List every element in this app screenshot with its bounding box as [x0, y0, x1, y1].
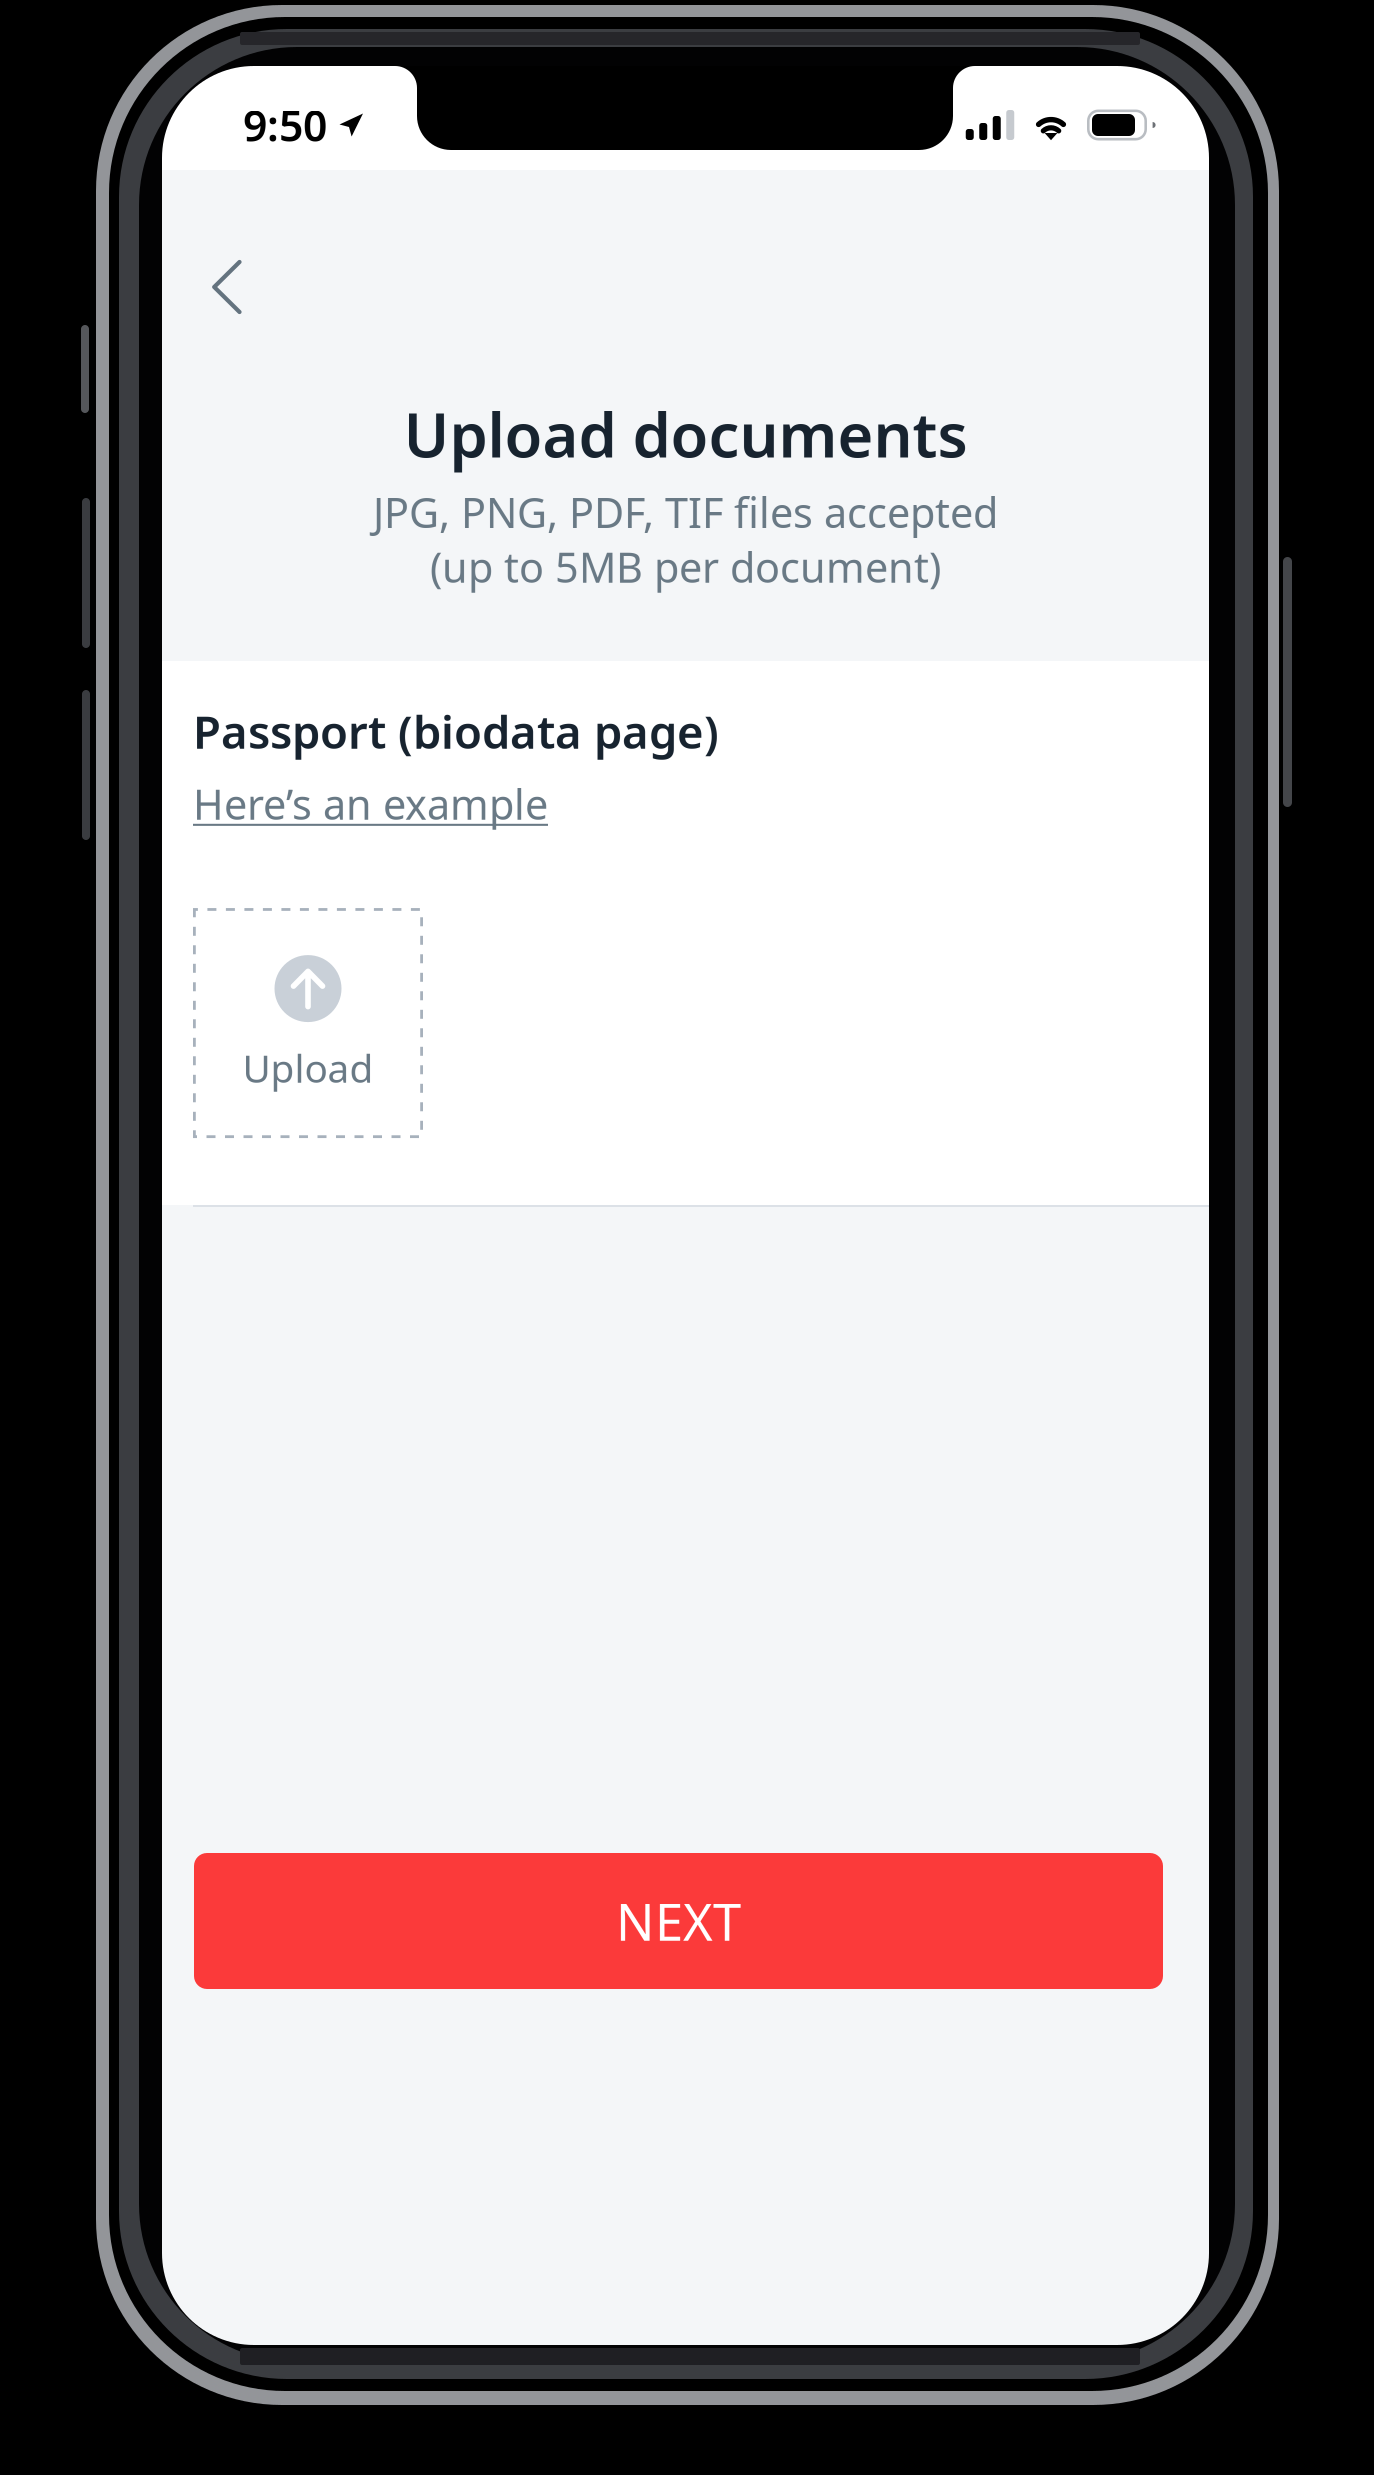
staticText: Here’s an example — [193, 776, 548, 831]
staticText: Upload documents — [403, 393, 967, 474]
staticText: NEXT — [616, 1887, 741, 1955]
button[interactable]: NEXT — [194, 1853, 1163, 1989]
staticText: JPG, PNG, PDF, TIF files accepted — [373, 484, 998, 539]
staticText: Passport (biodata page) — [193, 701, 719, 761]
staticText: 9:50 — [243, 97, 327, 153]
button[interactable]: Here’s an example — [193, 776, 548, 831]
staticText: (up to 5MB per document) — [430, 539, 941, 594]
button[interactable]: Back — [177, 237, 277, 337]
staticText: Upload — [242, 1042, 373, 1093]
button[interactable]: Upload passport biodata page — [193, 908, 423, 1138]
